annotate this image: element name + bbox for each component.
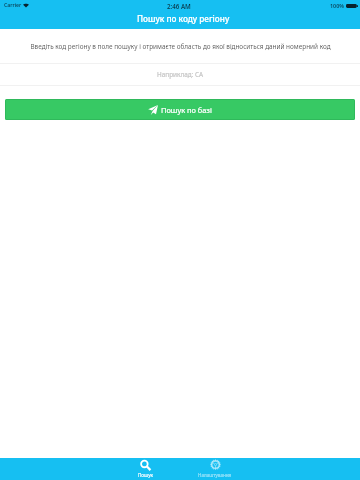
button[interactable]: Налаштування	[180, 460, 250, 478]
staticText: Пошук по коду регіону	[137, 13, 230, 24]
button[interactable]: Пошук по базі	[5, 99, 355, 120]
staticText: 2:46 AM	[167, 2, 191, 10]
staticText: Пошук	[138, 472, 153, 478]
staticText: Налаштування	[198, 472, 232, 478]
staticText: Наприклад: СА	[157, 70, 204, 79]
staticText: Carrier	[4, 2, 22, 9]
other: Пошук	[140, 460, 151, 471]
other: Налаштування	[210, 460, 221, 471]
staticText: 100%	[330, 2, 344, 9]
button[interactable]: Наприклад: СА	[0, 64, 360, 85]
button[interactable]: Пошук	[110, 460, 180, 478]
staticText: Пошук по базі	[161, 105, 212, 115]
staticText: Введіть код регіону в поле пошуку і отри…	[30, 42, 331, 51]
